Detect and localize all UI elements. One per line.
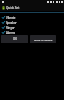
staticText: Speaker: [6, 21, 17, 25]
staticText: Quick Set: [6, 6, 20, 10]
other: App icon: [2, 6, 5, 10]
staticText: OK: [13, 37, 17, 41]
button[interactable]: Vibrate: [0, 15, 64, 20]
button[interactable]: Speaker: [0, 20, 64, 25]
staticText: Reset to default: [34, 38, 53, 41]
staticText: Alarms: [6, 31, 16, 35]
button[interactable]: OK: [1, 35, 28, 43]
staticText: Ringer: [6, 26, 15, 30]
staticText: Vibrate: [6, 16, 16, 20]
button[interactable]: Reset to default: [30, 35, 56, 43]
button[interactable]: Alarms: [0, 30, 64, 35]
button[interactable]: Ringer: [0, 25, 64, 30]
